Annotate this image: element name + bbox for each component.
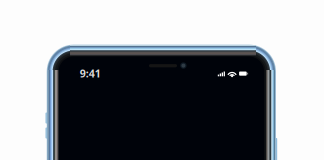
staticText: 9:41 (80, 66, 101, 80)
